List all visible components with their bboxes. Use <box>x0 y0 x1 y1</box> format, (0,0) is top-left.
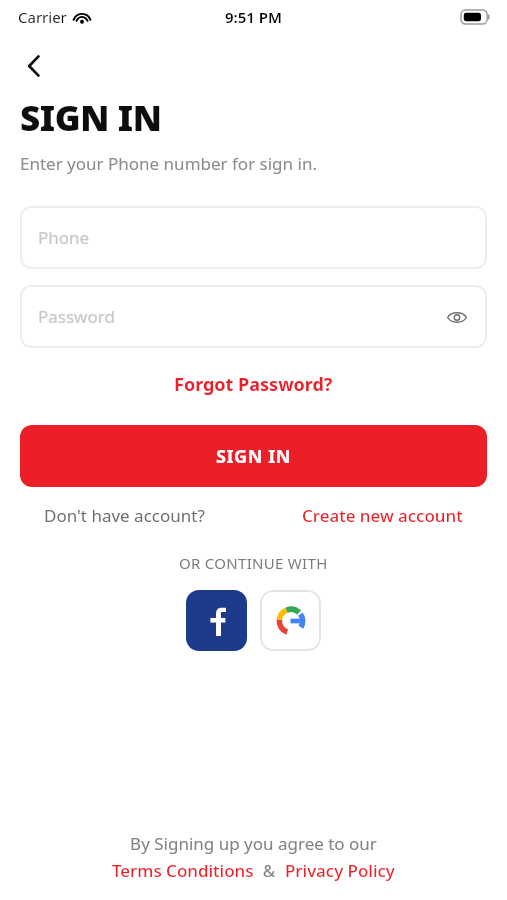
button[interactable]: SIGN IN <box>20 425 487 487</box>
staticText: Phone <box>38 226 90 249</box>
button[interactable]: Privacy Policy <box>285 859 395 882</box>
button[interactable]: Back <box>12 44 56 88</box>
staticText: & <box>254 859 285 882</box>
button[interactable]: Continue with Facebook <box>186 590 247 651</box>
button[interactable]: Continue with Google <box>260 590 321 651</box>
button[interactable]: Create new account <box>302 504 463 527</box>
staticText: By Signing up you agree to our <box>130 832 377 855</box>
staticText: Enter your Phone number for sign in. <box>20 152 317 175</box>
staticText: 9:51 PM <box>225 7 282 27</box>
staticText: Terms Conditions <box>112 859 254 882</box>
staticText: OR CONTINUE WITH <box>179 553 328 573</box>
button[interactable]: Terms Conditions <box>112 859 254 882</box>
button[interactable]: Show password <box>439 299 475 335</box>
button[interactable]: Password <box>20 285 487 348</box>
staticText: Forgot Password? <box>174 372 333 397</box>
staticText: Carrier <box>18 7 67 27</box>
staticText: Create new account <box>302 504 463 527</box>
button[interactable]: Forgot Password? <box>166 368 341 401</box>
staticText: SIGN IN <box>216 444 292 469</box>
staticText: SIGN IN <box>20 94 162 142</box>
button[interactable]: Phone <box>20 206 487 269</box>
staticText: Don't have account? <box>44 504 205 527</box>
staticText: Password <box>38 305 115 328</box>
staticText: Privacy Policy <box>285 859 395 882</box>
